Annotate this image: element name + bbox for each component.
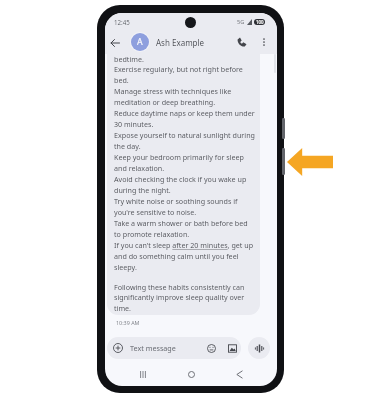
button[interactable]: Back xyxy=(215,368,263,381)
button[interactable]: Home xyxy=(167,368,215,381)
staticText: 100 xyxy=(256,19,264,25)
staticText: 5G xyxy=(237,18,245,26)
button[interactable]: bedtime. Exercise regularly, but not rig… xyxy=(107,54,260,315)
other: Gallery xyxy=(228,344,237,353)
staticText: Ash Example xyxy=(156,37,234,48)
other: Attach xyxy=(113,343,123,353)
staticText: Following these habits consistently can … xyxy=(114,282,245,313)
button[interactable]: Contact avatar xyxy=(130,32,150,52)
button[interactable]: Voice message xyxy=(248,337,270,359)
staticText: bedtime. Exercise regularly, but not rig… xyxy=(114,54,255,272)
button[interactable]: More options xyxy=(256,34,272,50)
staticText: A xyxy=(137,36,143,48)
staticText: 10:39 AM xyxy=(116,319,140,326)
other: Emoji xyxy=(207,344,216,353)
button[interactable]: Recents xyxy=(119,368,167,381)
staticText: 12:45 xyxy=(114,18,130,26)
button[interactable]: Attach xyxy=(107,337,241,359)
button[interactable]: Call xyxy=(234,34,250,50)
button[interactable]: Back xyxy=(107,35,122,50)
staticText: Text message xyxy=(130,343,207,353)
